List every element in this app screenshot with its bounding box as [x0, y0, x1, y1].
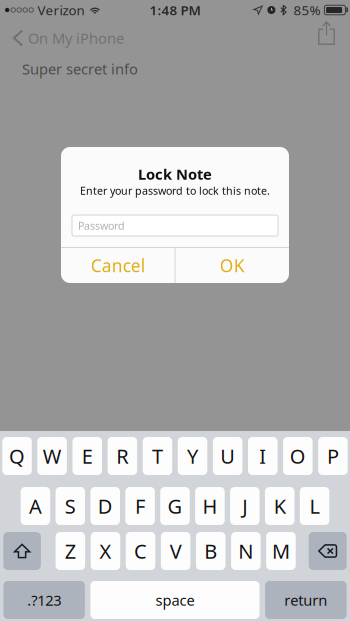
- button[interactable]: K: [265, 487, 294, 525]
- staticText: space: [155, 590, 194, 610]
- button[interactable]: Shift: [3, 532, 41, 570]
- button[interactable]: G: [160, 487, 190, 525]
- button[interactable]: I: [248, 437, 277, 475]
- staticText: return: [284, 590, 327, 610]
- staticText: K: [274, 493, 286, 519]
- staticText: Lock Note: [138, 164, 212, 184]
- staticText: Password: [78, 218, 125, 233]
- button[interactable]: B: [196, 532, 225, 570]
- staticText: E: [82, 443, 93, 469]
- button[interactable]: space: [90, 581, 259, 619]
- staticText: 1:48 PM: [149, 1, 200, 19]
- button[interactable]: F: [125, 487, 155, 525]
- staticText: P: [327, 443, 339, 469]
- button[interactable]: E: [72, 437, 102, 475]
- button[interactable]: S: [56, 487, 85, 525]
- staticText: Q: [9, 443, 25, 469]
- button[interactable]: Y: [178, 437, 207, 475]
- staticText: X: [99, 538, 111, 564]
- button[interactable]: OK: [175, 248, 289, 283]
- staticText: R: [116, 443, 128, 469]
- button[interactable]: U: [213, 437, 242, 475]
- button[interactable]: W: [37, 437, 67, 475]
- button[interactable]: V: [161, 532, 190, 570]
- staticText: M: [272, 538, 290, 564]
- staticText: U: [220, 443, 235, 469]
- staticText: N: [238, 538, 253, 564]
- button[interactable]: A: [21, 487, 50, 525]
- button[interactable]: .?123: [3, 581, 85, 619]
- button[interactable]: O: [283, 437, 313, 475]
- staticText: W: [43, 443, 62, 469]
- staticText: Z: [65, 538, 76, 564]
- button[interactable]: J: [230, 487, 260, 525]
- staticText: H: [202, 493, 217, 519]
- staticText: S: [65, 493, 76, 519]
- staticText: J: [242, 493, 247, 519]
- button[interactable]: Q: [2, 437, 32, 475]
- button[interactable]: Delete: [309, 532, 347, 570]
- button[interactable]: H: [195, 487, 225, 525]
- staticText: L: [310, 493, 320, 519]
- staticText: F: [135, 493, 145, 519]
- staticText: B: [204, 538, 217, 564]
- staticText: On My iPhone: [28, 28, 124, 48]
- staticText: Cancel: [91, 254, 145, 277]
- staticText: Verizon: [37, 1, 84, 19]
- button[interactable]: Z: [56, 532, 85, 570]
- staticText: A: [29, 493, 42, 519]
- button[interactable]: L: [300, 487, 329, 525]
- staticText: 85%: [293, 1, 320, 19]
- staticText: OK: [220, 254, 245, 277]
- button[interactable]: X: [91, 532, 120, 570]
- button[interactable]: M: [266, 532, 296, 570]
- button[interactable]: T: [143, 437, 172, 475]
- button[interactable]: R: [108, 437, 137, 475]
- staticText: I: [259, 443, 266, 469]
- button[interactable]: On My iPhone: [0, 23, 136, 53]
- staticText: V: [170, 538, 182, 564]
- staticText: Enter your password to lock this note.: [80, 183, 270, 198]
- staticText: Y: [187, 443, 198, 469]
- button[interactable]: return: [265, 581, 347, 619]
- button[interactable]: D: [90, 487, 120, 525]
- button[interactable]: Share: [304, 21, 350, 45]
- staticText: O: [290, 443, 306, 469]
- button[interactable]: N: [231, 532, 261, 570]
- staticText: G: [167, 493, 182, 519]
- staticText: C: [134, 538, 147, 564]
- button[interactable]: Cancel: [61, 248, 174, 283]
- button[interactable]: P: [318, 437, 348, 475]
- staticText: .?123: [27, 590, 61, 610]
- button[interactable]: C: [126, 532, 155, 570]
- staticText: D: [98, 493, 113, 519]
- staticText: Super secret info: [22, 59, 138, 78]
- staticText: T: [152, 443, 163, 469]
